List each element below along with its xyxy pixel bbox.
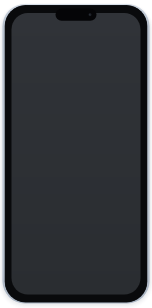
button[interactable]: iPhone device mockup with blank dark scr…	[0, 0, 152, 308]
